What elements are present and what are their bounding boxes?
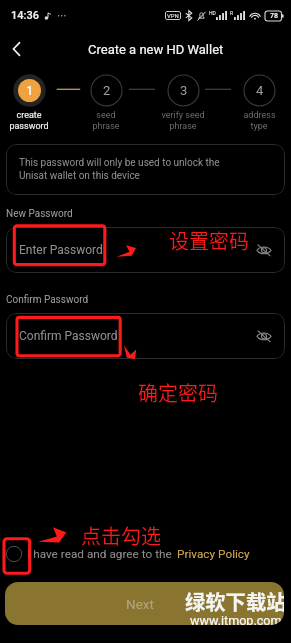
staticText: 3 [180, 83, 188, 98]
staticText: 确定密码 [138, 378, 218, 407]
staticText: 1 [26, 83, 34, 98]
staticText: HD [209, 10, 216, 16]
button[interactable]: Agree checkbox [4, 544, 24, 564]
button[interactable]: Privacy Policy [177, 547, 250, 561]
staticText: 4 [256, 83, 264, 98]
staticText: 2 [103, 83, 111, 98]
button[interactable]: Toggle password visibility [254, 326, 274, 346]
staticText: phrase [92, 121, 120, 132]
staticText: phrase [169, 121, 197, 132]
staticText: 14:36 [11, 9, 39, 22]
button[interactable]: Toggle password visibility [254, 240, 274, 260]
staticText: Next [126, 596, 154, 612]
button[interactable]: Back [3, 35, 31, 63]
staticText: 设置密码 [169, 226, 249, 255]
staticText: R [230, 10, 234, 16]
staticText: Confirm Password [19, 329, 118, 343]
staticText: type [250, 121, 268, 132]
staticText: www.itmop.com [190, 613, 282, 625]
staticText: ⋯ [57, 10, 67, 22]
staticText: Create a new HD Wallet [88, 42, 224, 57]
button[interactable]: 2 [70, 74, 142, 132]
staticText: Confirm Password [6, 294, 89, 306]
button[interactable]: Confirm Password [6, 313, 285, 359]
button[interactable]: 3 [147, 74, 219, 132]
staticText: VPN [167, 12, 179, 19]
staticText: New Password [6, 208, 73, 220]
staticText: password [9, 121, 49, 132]
staticText: I have read and agree to the [27, 547, 172, 561]
staticText: create [16, 110, 42, 121]
staticText: verify seed [161, 110, 205, 121]
button[interactable]: Enter Password [6, 227, 285, 273]
staticText: 点击勾选 [81, 521, 161, 550]
staticText: This password will only be used to unloc… [19, 157, 220, 182]
staticText: address [243, 110, 276, 121]
button[interactable]: Next [5, 582, 284, 625]
button[interactable]: 4 [223, 74, 291, 132]
button[interactable]: 1 [0, 74, 65, 132]
staticText: Enter Password [19, 243, 103, 257]
staticText: 78 [270, 12, 278, 20]
staticText: seed [96, 110, 116, 121]
staticText: 绿软下载站 [185, 586, 284, 615]
